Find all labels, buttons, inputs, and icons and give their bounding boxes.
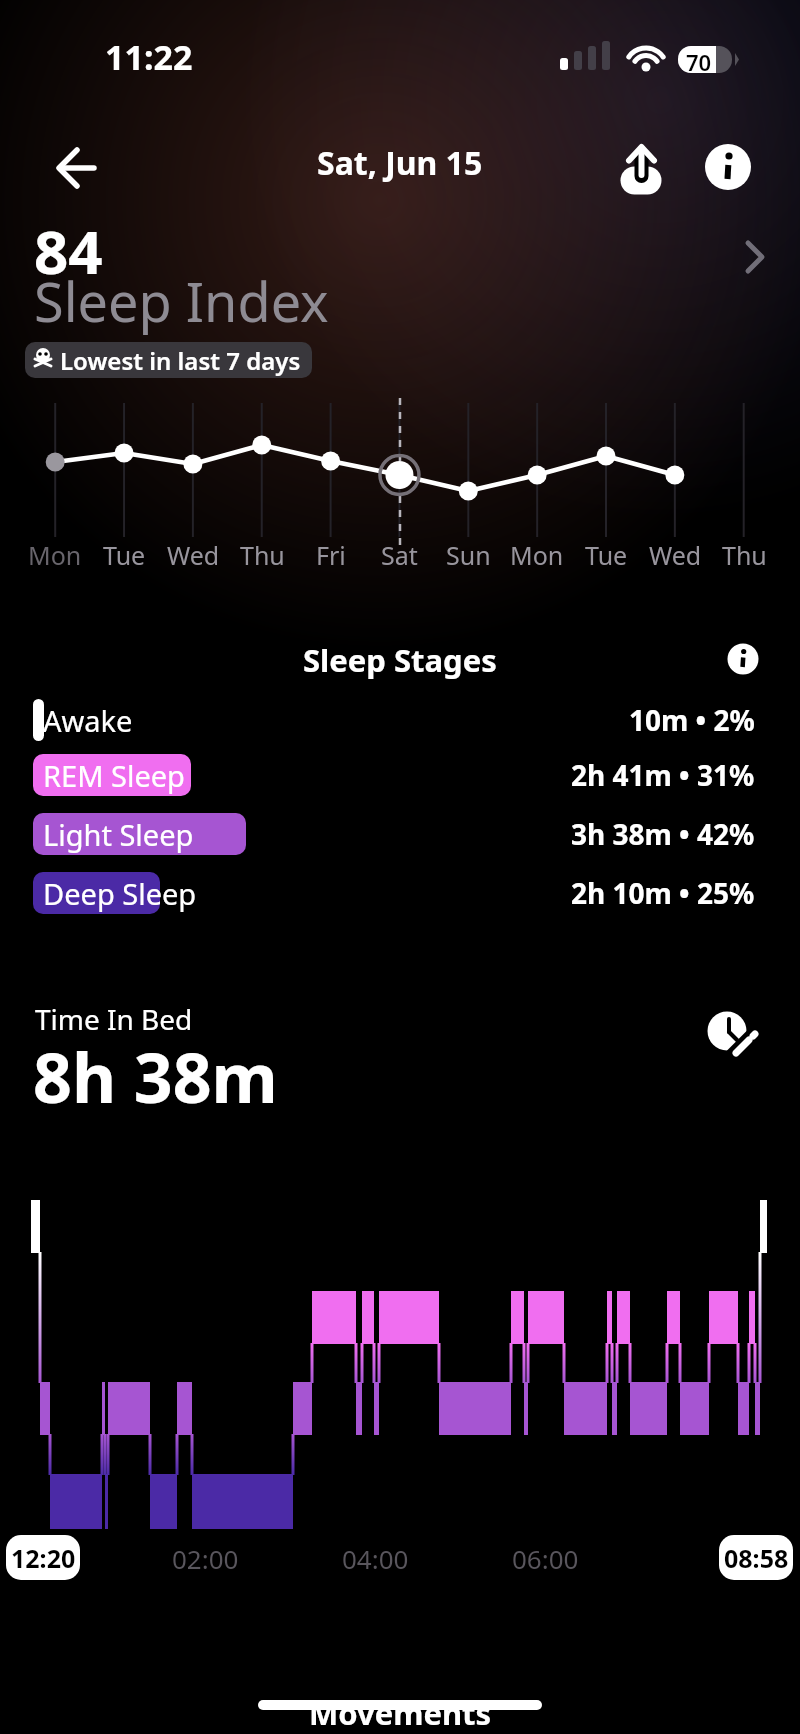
staticText: 06:00 <box>512 1541 579 1576</box>
button[interactable]: Deep Sleep <box>0 872 800 914</box>
button[interactable]: Awake <box>0 699 800 741</box>
staticText: Mon <box>510 538 564 572</box>
staticText: Light Sleep <box>43 815 194 854</box>
staticText: Awake <box>43 701 133 740</box>
staticText: Movements <box>309 1692 492 1734</box>
staticText: Tue <box>585 538 628 572</box>
staticText: 8h 38m <box>33 1030 278 1123</box>
staticText: 11:22 <box>105 34 193 80</box>
staticText: Wed <box>649 538 702 572</box>
staticText: 10m • 2% <box>629 701 755 739</box>
button[interactable]: Lowest in last 7 days <box>25 342 312 378</box>
button[interactable] <box>701 140 755 194</box>
staticText: 02:00 <box>172 1541 239 1576</box>
button[interactable]: REM Sleep <box>0 754 800 796</box>
staticText: Thu <box>240 538 285 572</box>
staticText: Sleep Index <box>34 264 329 338</box>
button[interactable] <box>700 230 780 286</box>
staticText: 2h 10m • 25% <box>571 874 755 912</box>
staticText: Sat, Jun 15 <box>317 141 483 185</box>
staticText: Time In Bed <box>35 1000 193 1038</box>
staticText: 04:00 <box>342 1541 409 1576</box>
staticText: 3h 38m • 42% <box>571 815 755 853</box>
staticText: 84 <box>34 210 103 292</box>
button[interactable] <box>720 636 766 682</box>
staticText: REM Sleep <box>43 756 185 795</box>
button[interactable]: Light Sleep <box>0 813 800 855</box>
staticText: 2h 41m • 31% <box>571 756 755 794</box>
button[interactable] <box>700 1005 760 1065</box>
staticText: Sat <box>381 538 418 572</box>
staticText: 12:20 <box>11 1541 76 1575</box>
staticText: Wed <box>167 538 220 572</box>
staticText: Lowest in last 7 days <box>60 344 301 377</box>
staticText: Fri <box>316 538 346 572</box>
staticText: Mon <box>28 538 82 572</box>
staticText: Deep Sleep <box>43 874 197 913</box>
staticText: 70 <box>686 47 712 77</box>
button[interactable] <box>45 140 105 196</box>
staticText: Sleep Stages <box>303 639 497 681</box>
staticText: 08:58 <box>724 1541 789 1575</box>
staticText: Tue <box>103 538 146 572</box>
staticText: Sun <box>446 538 491 572</box>
button[interactable] <box>608 135 674 225</box>
staticText: Thu <box>722 538 767 572</box>
